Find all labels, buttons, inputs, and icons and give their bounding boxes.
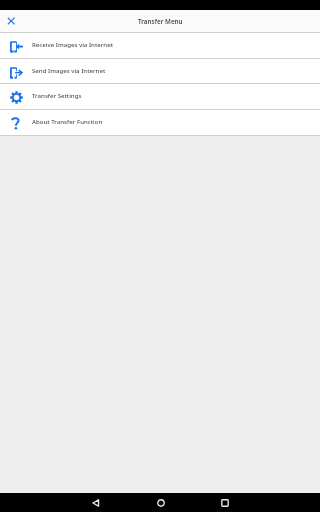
button[interactable]: Close <box>0 10 22 32</box>
button[interactable]: Receive Images via Internet <box>0 33 320 59</box>
staticText: Transfer Menu <box>138 17 183 26</box>
button[interactable]: Home <box>151 493 170 512</box>
button[interactable]: About Transfer Function <box>0 110 320 136</box>
button[interactable]: Send Images via Internet <box>0 59 320 85</box>
staticText: About Transfer Function <box>32 117 103 125</box>
staticText: Send Images via Internet <box>32 66 106 74</box>
staticText: Transfer Settings <box>32 91 82 99</box>
button[interactable]: Transfer Settings <box>0 84 320 110</box>
button[interactable]: Recents <box>215 493 234 512</box>
staticText: Receive Images via Internet <box>32 40 113 48</box>
button[interactable]: Back <box>86 493 105 512</box>
